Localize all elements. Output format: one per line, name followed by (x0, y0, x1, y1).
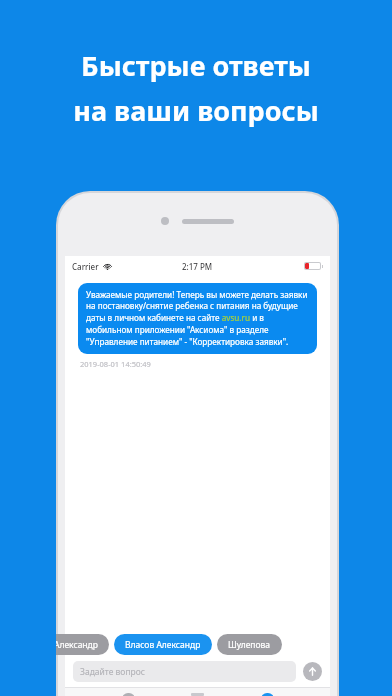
staticText: 2:17 PM (182, 261, 213, 272)
button[interactable]: Шулепова (217, 634, 282, 655)
staticText: Быстрые ответы (81, 47, 311, 84)
staticText: Задайте вопрос (80, 666, 145, 678)
button[interactable]: Chat (261, 693, 274, 696)
staticText: Власов Александр (125, 639, 201, 651)
button[interactable]: Home (122, 693, 135, 696)
staticText: Уважаемые родители! Теперь вы можете дел… (86, 289, 309, 348)
staticText: на ваши вопросы (73, 92, 319, 129)
button[interactable]: Уважаемые родители! Теперь вы можете дел… (78, 283, 317, 354)
button[interactable]: List (191, 693, 204, 696)
button[interactable]: Send (303, 662, 322, 681)
staticText: Carrier (72, 261, 99, 272)
staticText: Александр (56, 639, 98, 651)
staticText: Шулепова (228, 639, 271, 651)
staticText: 2019-08-01 14:50:49 (80, 359, 151, 369)
button[interactable]: Власов Александр (114, 634, 212, 655)
button[interactable]: Александр (56, 634, 109, 655)
button[interactable]: Задайте вопрос (73, 661, 296, 682)
